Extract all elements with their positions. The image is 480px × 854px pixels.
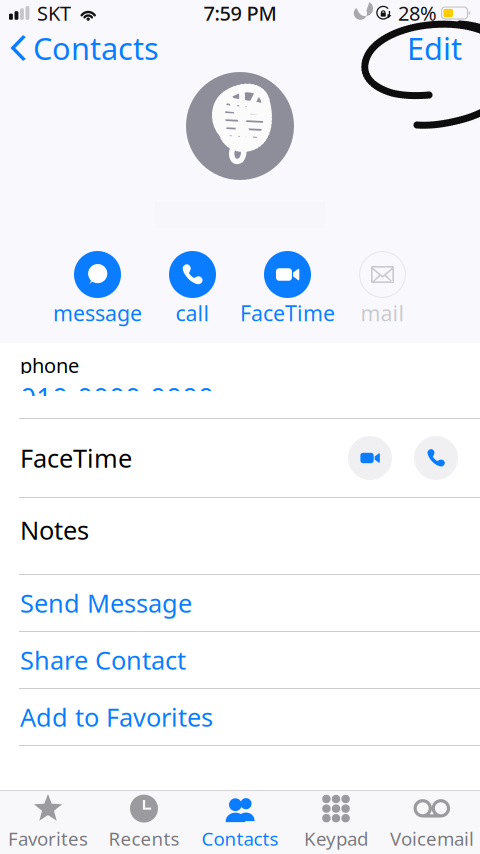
staticText: FaceTime xyxy=(20,441,132,475)
staticText: Add to Favorites xyxy=(20,700,213,734)
button[interactable]: Contacts xyxy=(0,26,171,70)
staticText: Edit xyxy=(407,28,462,68)
button[interactable]: Edit xyxy=(391,26,480,70)
staticText: Contacts xyxy=(33,28,159,68)
staticText: phone xyxy=(20,352,79,379)
staticText: 28% xyxy=(398,0,437,26)
button[interactable]: Recents xyxy=(96,791,192,854)
staticText: call xyxy=(175,299,209,327)
button[interactable]: FaceTime xyxy=(240,251,335,322)
staticText: Send Message xyxy=(20,586,192,620)
staticText: 7:59 PM xyxy=(203,0,276,26)
staticText: Notes xyxy=(20,513,89,547)
staticText: Share Contact xyxy=(20,643,186,677)
staticText: 010-0000-0000 xyxy=(20,379,214,416)
staticText: mail xyxy=(360,299,404,327)
button[interactable]: message xyxy=(50,251,145,322)
staticText: Recents xyxy=(108,826,179,851)
button[interactable]: FaceTime video xyxy=(348,436,392,480)
staticText: Favorites xyxy=(8,826,88,851)
button[interactable]: Share Contact xyxy=(0,632,480,688)
staticText: Voicemail xyxy=(390,826,474,851)
button[interactable]: FaceTime audio xyxy=(414,436,458,480)
staticText: Contacts xyxy=(201,826,278,851)
staticText: FaceTime xyxy=(240,299,335,327)
button[interactable]: Keypad xyxy=(288,791,384,854)
button[interactable]: phone xyxy=(0,343,480,418)
button[interactable]: Send Message xyxy=(0,575,480,631)
button[interactable]: Notes xyxy=(0,498,480,574)
staticText: Keypad xyxy=(304,826,368,851)
button[interactable]: Add to Favorites xyxy=(0,689,480,745)
button[interactable]: Contacts xyxy=(192,791,288,854)
button[interactable]: Voicemail xyxy=(384,791,480,854)
button[interactable]: call xyxy=(145,251,240,322)
button[interactable]: Favorites xyxy=(0,791,96,854)
button[interactable]: mail xyxy=(335,251,430,322)
staticText: SKT xyxy=(37,0,71,26)
staticText: message xyxy=(53,299,142,327)
